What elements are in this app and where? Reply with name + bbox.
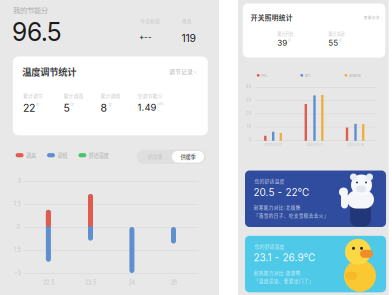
staticText: 2023-03-07: [264, 143, 282, 147]
staticText: 开关照明统计: [251, 12, 293, 22]
staticText: 1.49: [137, 102, 156, 113]
staticText: 您的舒适温度: [255, 177, 285, 184]
staticText: 8: [100, 102, 107, 114]
staticText: 10: [246, 124, 251, 129]
staticText: 26: [170, 279, 176, 286]
staticText: 0: [248, 137, 251, 142]
staticText: 排名: [182, 17, 192, 24]
staticText: 空调节能⑤: [137, 92, 162, 99]
staticText: 40: [245, 84, 251, 89]
staticText: 55: [328, 38, 338, 48]
button[interactable]: 供暖季: [172, 151, 204, 162]
staticText: 关闭异常: [348, 73, 360, 78]
button[interactable]: 温度调节统计: [22, 65, 196, 77]
staticText: 2023-04-11: [306, 143, 322, 147]
staticText: -3: [14, 269, 20, 276]
staticText: 5: [63, 102, 69, 114]
staticText: 次: [339, 38, 342, 42]
button[interactable]: 供冷季: [138, 151, 172, 162]
staticText: 温度调节统计: [22, 65, 76, 78]
staticText: 次: [288, 38, 291, 42]
staticText: 次: [70, 102, 74, 107]
staticText: 24: [128, 279, 135, 286]
staticText: 30: [245, 97, 251, 102]
staticText: 「落雪的日子、吃支雪糕去去火」: [254, 212, 329, 219]
staticText: 开灯: [261, 73, 267, 78]
staticText: 累计调节: [23, 92, 43, 99]
staticText: 96.5: [12, 17, 62, 47]
staticText: 我的节能分: [13, 4, 48, 15]
staticText: 22: [23, 102, 35, 114]
staticText: 舒适温度: [89, 151, 109, 159]
staticText: 20.5 - 22℃: [254, 186, 310, 198]
staticText: 供冷季: [147, 153, 162, 161]
staticText: 累计调低: [100, 92, 120, 99]
staticText: +--: [139, 32, 152, 42]
staticText: 次: [35, 102, 39, 107]
staticText: 20: [245, 110, 251, 116]
staticText: 供暖季: [180, 153, 195, 161]
staticText: 调低: [57, 151, 67, 159]
staticText: 调高: [26, 151, 36, 159]
staticText: 「温度适宜、要爱出门了」: [254, 277, 314, 284]
staticText: 23.1 - 26.9℃: [254, 252, 316, 264]
staticText: 累计开启: [277, 30, 293, 37]
staticText: 您的舒适温度: [255, 243, 285, 250]
staticText: 累计调高: [63, 92, 83, 99]
staticText: 2023-05-16: [347, 143, 364, 147]
staticText: 3: [17, 177, 20, 184]
staticText: 耐热能力对比: 旅游鸭: [254, 269, 301, 276]
staticText: 22.5: [43, 279, 54, 286]
staticText: 1.5: [13, 200, 20, 207]
staticText: kWh: [157, 102, 164, 106]
staticText: 39: [277, 38, 287, 48]
staticText: 1.5: [13, 246, 20, 253]
staticText: 关灯: [304, 73, 310, 78]
staticText: 23.5: [85, 279, 96, 286]
staticText: 今日新增: [140, 17, 160, 24]
staticText: 调节记录 ›: [169, 67, 196, 75]
staticText: 119: [181, 32, 195, 45]
button[interactable]: 开关照明统计: [251, 13, 382, 22]
staticText: 0: [16, 223, 20, 230]
staticText: 累计关闭: [328, 30, 344, 37]
staticText: 次: [108, 102, 112, 107]
staticText: 耐寒能力对比: 北极熊: [254, 204, 301, 211]
staticText: 查看记录 ›: [364, 15, 382, 20]
